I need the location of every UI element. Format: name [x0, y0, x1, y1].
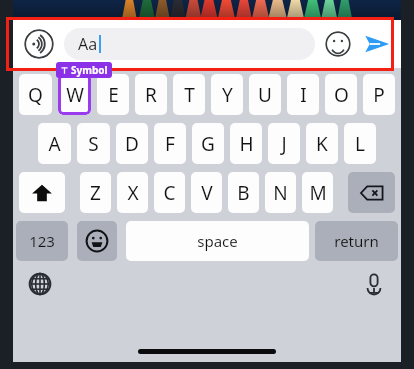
button[interactable]: Aa	[64, 28, 315, 60]
staticText: A	[48, 131, 61, 157]
staticText: M	[309, 180, 327, 206]
button[interactable]: Y	[211, 74, 243, 115]
button[interactable]: space	[126, 221, 309, 261]
staticText: B	[237, 180, 250, 206]
staticText: L	[355, 131, 365, 157]
staticText: R	[145, 82, 157, 108]
button[interactable]: P	[363, 74, 395, 115]
staticText: C	[163, 180, 176, 206]
button[interactable]: K	[306, 123, 338, 164]
button[interactable]: Emoji keyboard	[77, 221, 117, 261]
button[interactable]: X	[117, 172, 148, 213]
button[interactable]: M	[302, 172, 333, 213]
button[interactable]: return	[315, 221, 398, 261]
staticText: return	[334, 231, 379, 251]
button[interactable]: Z	[80, 172, 111, 213]
button[interactable]: I	[287, 74, 319, 115]
button[interactable]: G	[192, 123, 224, 164]
staticText: I	[300, 82, 307, 108]
button[interactable]: S	[77, 123, 110, 164]
button[interactable]: Emoji	[325, 31, 351, 57]
staticText: H	[239, 131, 254, 157]
staticText: 123	[29, 231, 55, 251]
button[interactable]: U	[249, 74, 281, 115]
button[interactable]: V	[191, 172, 222, 213]
staticText: K	[316, 131, 328, 157]
staticText: O	[334, 82, 349, 108]
button[interactable]: Q	[19, 74, 52, 115]
button[interactable]: Shift	[19, 172, 65, 213]
staticText: J	[281, 131, 287, 157]
staticText: D	[125, 131, 139, 157]
staticText: E	[108, 82, 119, 108]
staticText: T	[184, 82, 195, 108]
button[interactable]: Backspace	[348, 172, 395, 213]
button[interactable]: R	[135, 74, 167, 115]
staticText: V	[201, 180, 213, 206]
button[interactable]: F	[154, 123, 186, 164]
button[interactable]: C	[154, 172, 185, 213]
button[interactable]: H	[230, 123, 262, 164]
staticText: X	[127, 180, 139, 206]
staticText: Q	[28, 82, 43, 108]
staticText: G	[201, 131, 215, 157]
staticText: Y	[222, 82, 233, 108]
button[interactable]: Dictation	[359, 269, 389, 299]
staticText: Aa	[78, 33, 98, 55]
staticText: Z	[90, 180, 101, 206]
staticText: U	[258, 82, 272, 108]
button[interactable]: B	[228, 172, 259, 213]
staticText: F	[165, 131, 175, 157]
staticText: S	[88, 131, 99, 157]
button[interactable]: Apps	[24, 29, 54, 59]
button[interactable]: E	[97, 74, 129, 115]
staticText: space	[197, 231, 238, 251]
staticText: P	[373, 82, 385, 108]
staticText: W	[66, 82, 84, 108]
button[interactable]: A	[38, 123, 71, 164]
button[interactable]: W	[58, 74, 91, 115]
staticText: N	[273, 180, 288, 206]
staticText: Symbol	[71, 63, 108, 77]
button[interactable]: Change keyboard	[25, 269, 55, 299]
button[interactable]: 123	[16, 221, 68, 261]
button[interactable]: T	[173, 74, 205, 115]
button[interactable]: Send	[361, 28, 393, 60]
button[interactable]: N	[265, 172, 296, 213]
button[interactable]: O	[325, 74, 357, 115]
button[interactable]: J	[268, 123, 300, 164]
button[interactable]: D	[116, 123, 148, 164]
button[interactable]: L	[344, 123, 376, 164]
